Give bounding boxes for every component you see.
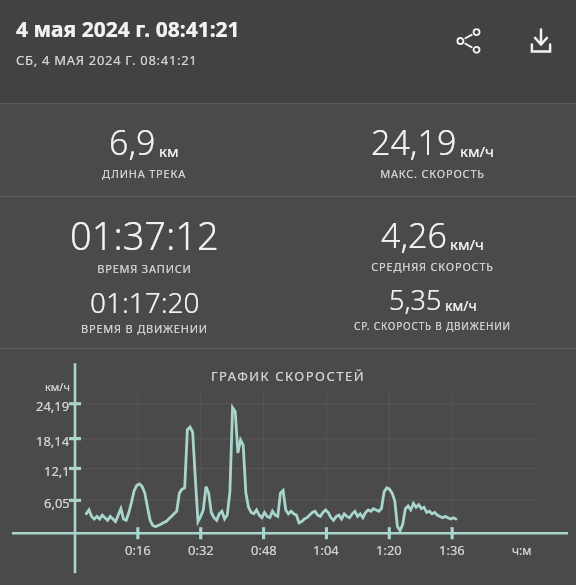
staticText: км (159, 141, 179, 161)
staticText: 1:04 (313, 541, 339, 559)
staticText: МАКС. СКОРОСТЬ (380, 166, 485, 181)
staticText: 18,14 (36, 432, 70, 450)
staticText: км/ч (460, 141, 494, 161)
staticText: ч:м (512, 542, 532, 558)
staticText: 24,19 (371, 119, 457, 165)
staticText: ДЛИНА ТРЕКА (102, 166, 186, 181)
button[interactable]: Share (444, 16, 494, 66)
staticText: 4,26 (381, 212, 447, 258)
staticText: км/ч (45, 379, 70, 394)
staticText: ВРЕМЯ В ДВИЖЕНИИ (81, 321, 208, 336)
staticText: 6,05 (44, 494, 70, 512)
staticText: СРЕДНЯЯ СКОРОСТЬ (371, 259, 494, 274)
staticText: 4 мая 2024 г. 08:41:21 (16, 15, 240, 44)
staticText: 6,9 (109, 119, 156, 165)
staticText: ГРАФИК СКОРОСТЕЙ (211, 367, 366, 385)
staticText: 0:32 (188, 541, 214, 559)
button[interactable]: 24,19 (288, 119, 576, 181)
button[interactable]: ГРАФИК СКОРОСТЕЙ (0, 349, 576, 585)
staticText: 0:16 (125, 541, 151, 559)
staticText: 01:37:12 (70, 209, 219, 261)
staticText: 24,19 (36, 397, 70, 415)
staticText: СР. СКОРОСТЬ В ДВИЖЕНИИ (354, 319, 511, 333)
button[interactable]: 6,9 (0, 119, 288, 181)
button[interactable]: Download (516, 16, 566, 66)
button[interactable]: 01:37:12 (70, 209, 219, 276)
button[interactable]: 4,26 (371, 212, 494, 274)
button[interactable]: 5,35 (354, 281, 511, 333)
staticText: ВРЕМЯ ЗАПИСИ (97, 261, 192, 276)
staticText: 01:17:20 (90, 283, 200, 321)
staticText: СБ, 4 МАЯ 2024 Г. 08:41:21 (16, 51, 198, 69)
staticText: 1:20 (376, 541, 402, 559)
staticText: 5,35 (389, 281, 442, 318)
button[interactable]: 01:17:20 (81, 283, 208, 336)
staticText: км/ч (450, 234, 484, 254)
staticText: 1:36 (439, 541, 465, 559)
staticText: 12,1 (44, 462, 70, 480)
staticText: км/ч (445, 296, 477, 315)
staticText: 0:48 (251, 541, 277, 559)
